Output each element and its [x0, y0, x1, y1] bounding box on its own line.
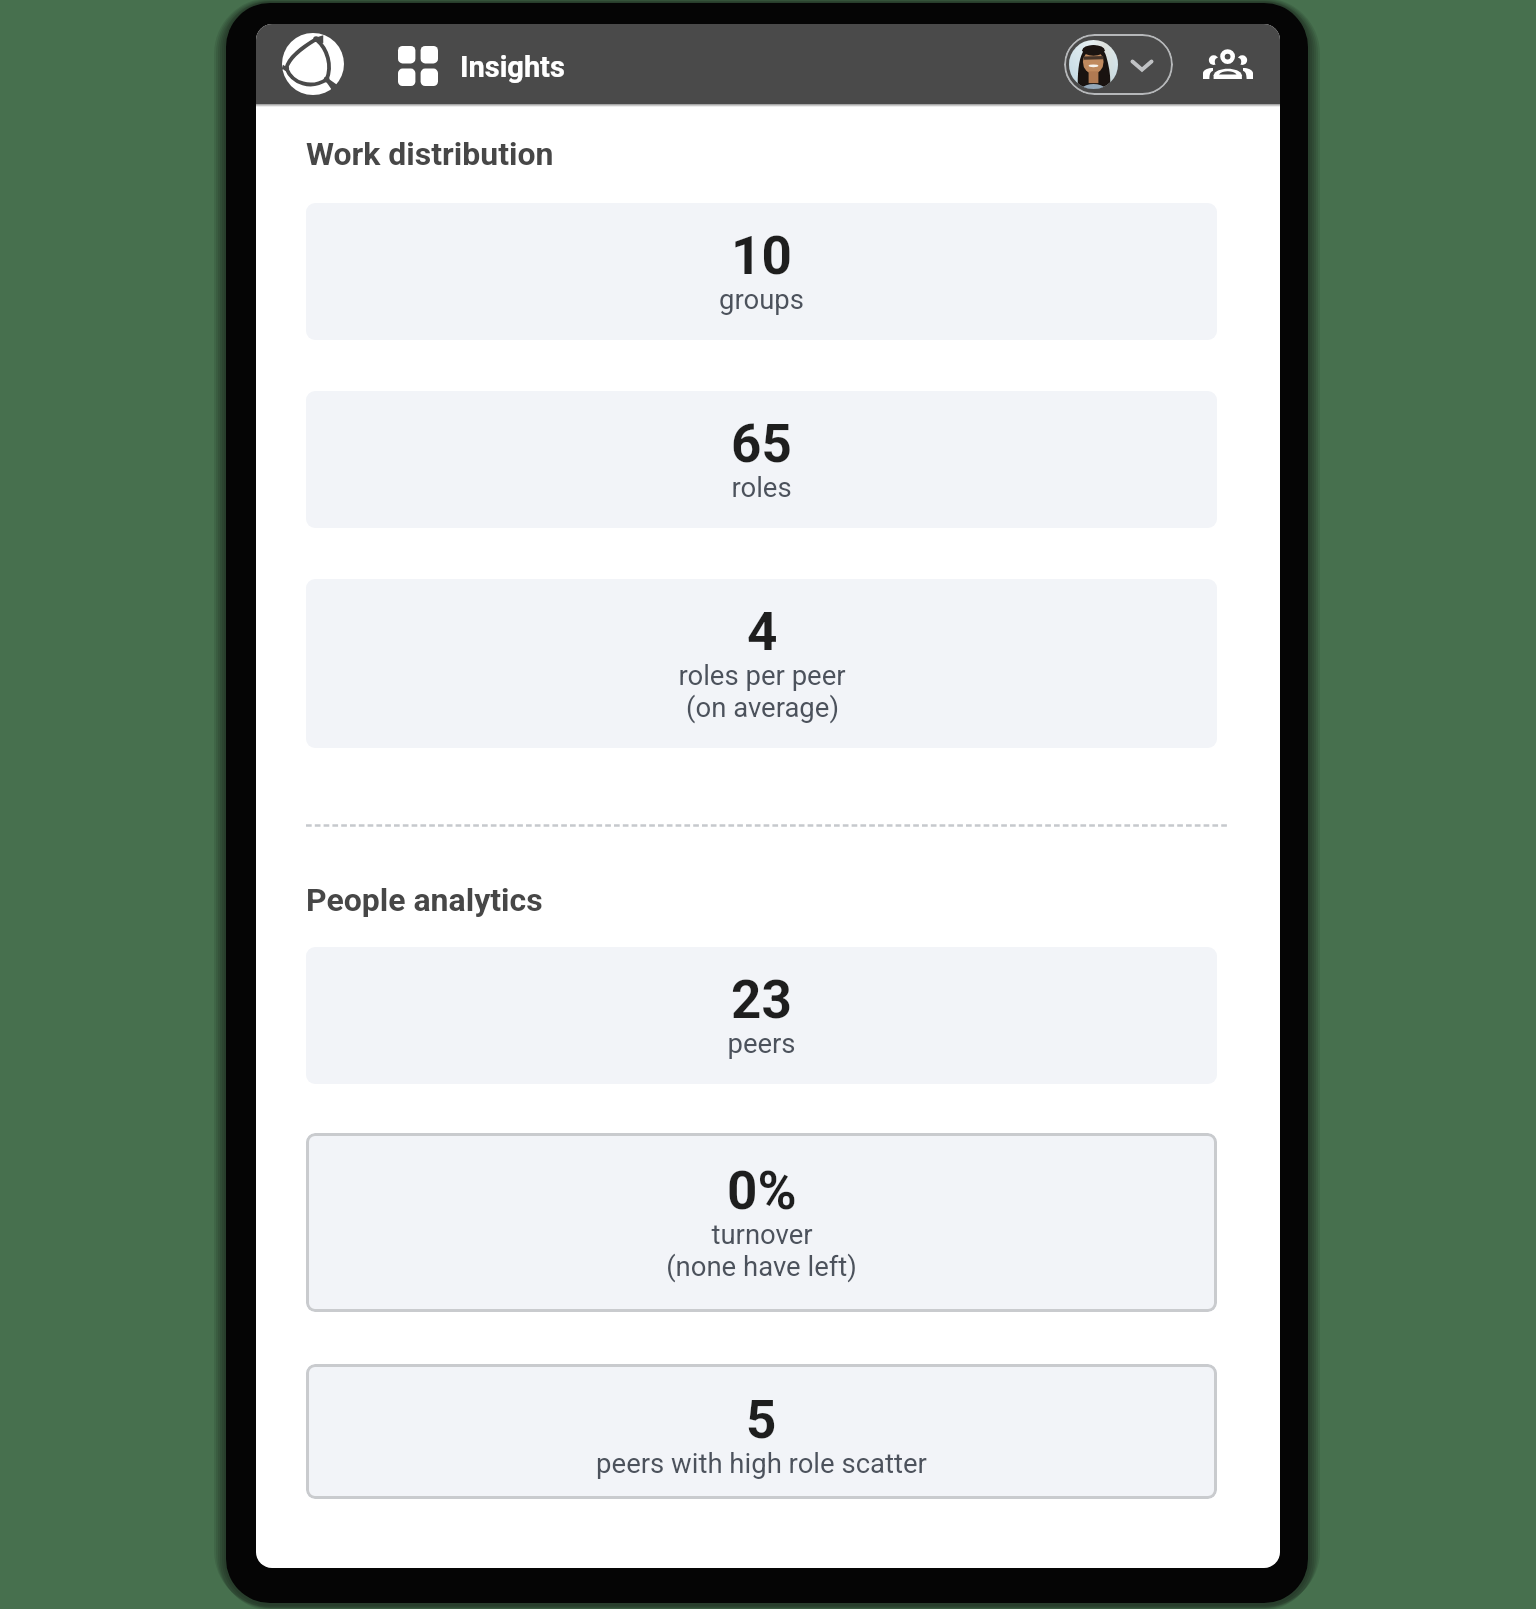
staticText: People analytics — [306, 881, 543, 919]
button[interactable]: 23 — [306, 947, 1217, 1084]
staticText: 4 — [747, 601, 778, 663]
button[interactable]: 65 — [306, 391, 1217, 528]
button[interactable]: 5 — [306, 1364, 1217, 1499]
button[interactable]: 10 — [306, 203, 1217, 340]
staticText: 0% — [727, 1160, 797, 1222]
staticText: (none have left) — [666, 1250, 857, 1282]
button[interactable]: Account — [1064, 34, 1173, 95]
staticText: turnover — [711, 1218, 813, 1250]
button[interactable]: 0% — [306, 1133, 1217, 1312]
staticText: Work distribution — [306, 135, 554, 173]
staticText: roles — [731, 471, 792, 503]
staticText: groups — [719, 283, 804, 315]
staticText: (on average) — [686, 691, 839, 723]
button[interactable]: 4 — [306, 579, 1217, 748]
button[interactable]: Members — [1198, 34, 1258, 94]
staticText: 5 — [746, 1389, 777, 1451]
staticText: peers with high role scatter — [596, 1447, 927, 1479]
staticText: peers — [727, 1027, 796, 1059]
button[interactable]: Apps — [390, 36, 446, 92]
staticText: Insights — [460, 50, 565, 84]
button[interactable]: Home — [276, 27, 350, 101]
staticText: 23 — [731, 969, 792, 1031]
staticText: roles per peer — [678, 659, 846, 691]
staticText: 10 — [731, 225, 792, 287]
staticText: 65 — [731, 413, 792, 475]
